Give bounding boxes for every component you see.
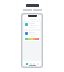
button[interactable]: Discover (29, 62, 32, 65)
button[interactable] (24, 22, 40, 29)
button[interactable]: Category (24, 31, 40, 41)
button[interactable]: Category (31, 38, 33, 40)
button[interactable]: Category (33, 38, 35, 40)
button[interactable]: Messages (32, 62, 35, 65)
button[interactable]: Profile (36, 62, 39, 65)
button[interactable]: Home (25, 62, 28, 65)
